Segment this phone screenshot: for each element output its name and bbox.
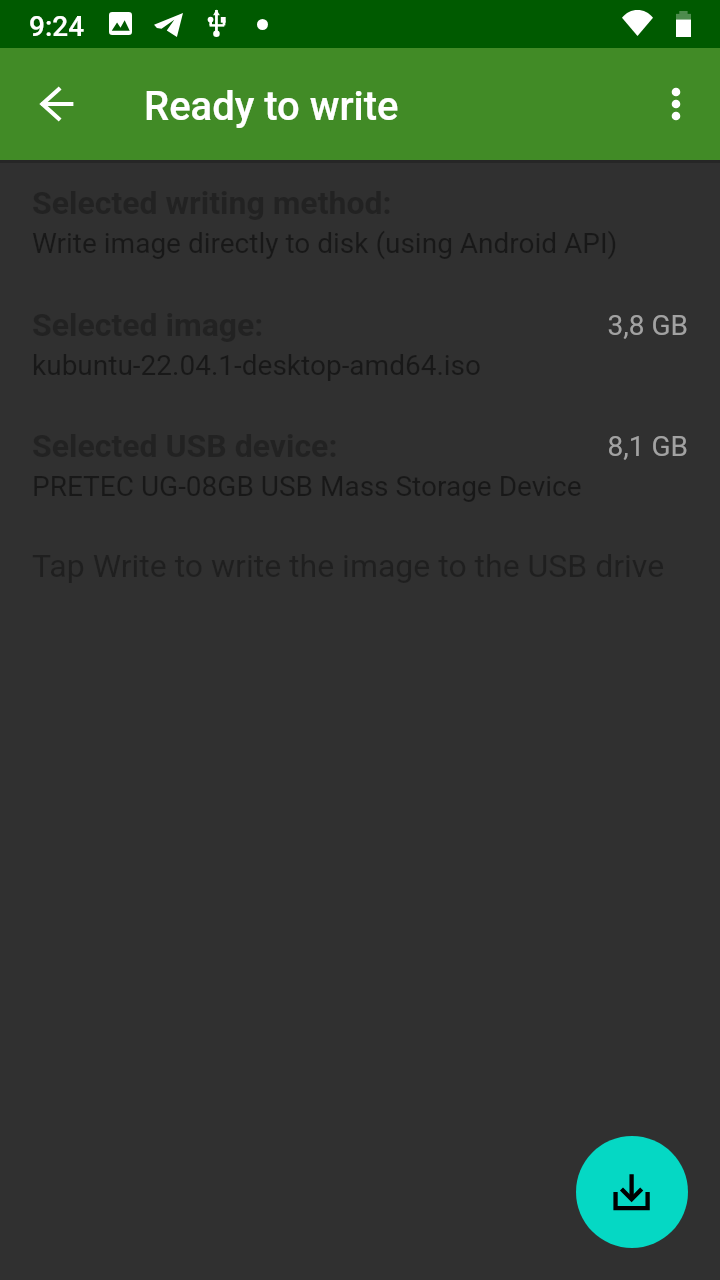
- staticText: Selected writing method:: [32, 184, 392, 222]
- staticText: Write image directly to disk (using Andr…: [32, 227, 618, 260]
- staticText: Selected USB device:: [32, 427, 338, 465]
- staticText: PRETEC UG-08GB USB Mass Storage Device: [32, 470, 582, 503]
- staticText: Selected image:: [32, 306, 264, 344]
- staticText: 3,8 GB: [607, 309, 688, 342]
- button[interactable]: More options: [644, 72, 708, 136]
- staticText: 9:24: [29, 10, 85, 43]
- staticText: kubuntu-22.04.1-desktop-amd64.iso: [32, 349, 482, 382]
- staticText: Ready to write: [144, 83, 399, 130]
- staticText: 8,1 GB: [607, 430, 688, 463]
- button[interactable]: Write: [576, 1136, 688, 1248]
- button[interactable]: Back: [25, 72, 89, 136]
- staticText: Tap Write to write the image to the USB …: [32, 547, 665, 585]
